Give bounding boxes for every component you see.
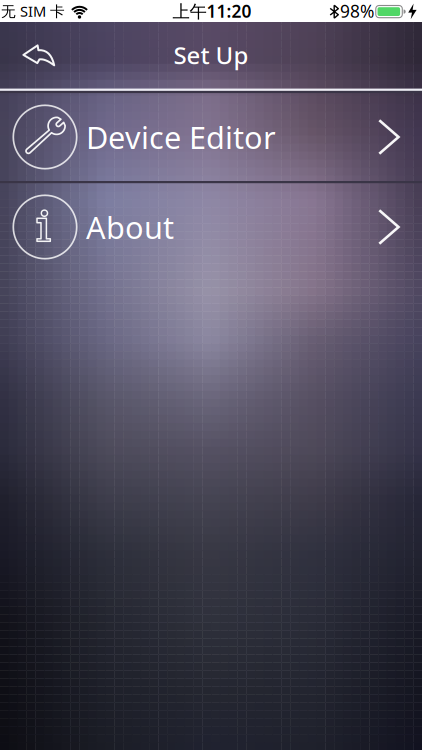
button[interactable]: Device Editor: [0, 93, 422, 181]
staticText: 无 SIM 卡: [1, 1, 65, 21]
staticText: 上午11:20: [172, 0, 251, 22]
button[interactable]: About: [0, 183, 422, 271]
staticText: Device Editor: [86, 117, 276, 157]
staticText: Set Up: [173, 39, 248, 71]
staticText: 98%: [340, 0, 374, 22]
staticText: About: [86, 207, 174, 247]
button[interactable]: Back: [17, 37, 61, 77]
